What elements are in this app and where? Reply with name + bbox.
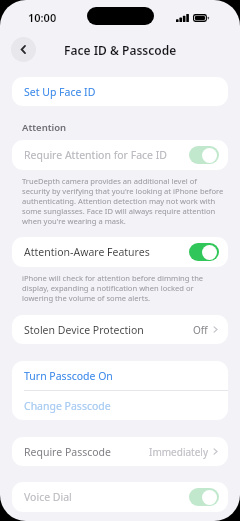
staticText: Attention <box>22 121 67 134</box>
button[interactable]: Attention-Aware Features <box>12 237 228 267</box>
button[interactable]: Back <box>11 37 36 62</box>
button[interactable]: Set Up Face ID <box>12 77 228 106</box>
staticText: Require Attention for Face ID <box>24 148 189 162</box>
button[interactable]: Turn Passcode On <box>12 361 228 390</box>
staticText: Attention-Aware Features <box>24 245 189 259</box>
staticText: Set Up Face ID <box>24 85 96 99</box>
staticText: Music Voice Control is always enabled. <box>22 518 159 521</box>
button[interactable]: Change Passcode <box>12 391 228 420</box>
staticText: Off <box>193 323 208 337</box>
staticText: Immediately <box>149 445 208 459</box>
button[interactable]: Require Attention for Face ID <box>12 140 228 170</box>
button[interactable]: Stolen Device Protection <box>12 315 228 344</box>
staticText: Turn Passcode On <box>24 369 113 383</box>
staticText: Change Passcode <box>24 399 111 413</box>
staticText: TrueDepth camera provides an additional … <box>22 176 224 226</box>
staticText: Face ID & Passcode <box>64 42 177 58</box>
staticText: iPhone will check for attention before d… <box>22 273 224 303</box>
staticText: Stolen Device Protection <box>24 323 193 337</box>
staticText: Voice Dial <box>24 490 189 504</box>
button[interactable]: Require Passcode <box>12 437 228 466</box>
staticText: 10:00 <box>28 10 57 25</box>
staticText: Require Passcode <box>24 445 149 459</box>
button[interactable]: Voice Dial <box>12 482 228 512</box>
